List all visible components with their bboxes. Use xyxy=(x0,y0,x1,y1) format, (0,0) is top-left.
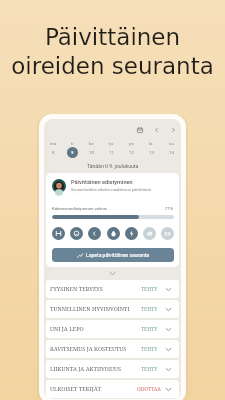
staticText: 8 xyxy=(52,150,55,155)
staticText: TEHTY xyxy=(141,286,158,293)
staticText: su xyxy=(169,141,174,146)
button[interactable]: Notes xyxy=(161,227,174,240)
staticText: 13 xyxy=(149,150,154,155)
button[interactable]: Nutrition xyxy=(107,227,120,240)
staticText: ma xyxy=(50,141,57,146)
staticText: ke xyxy=(89,141,94,146)
staticText: TUNNELLINEN HYVINVOINTI xyxy=(50,305,130,313)
button[interactable]: UNI JA LEPO xyxy=(46,320,179,338)
staticText: FYYSINEN TERVEYS xyxy=(50,285,103,293)
staticText: to xyxy=(109,141,113,146)
button[interactable]: Previous week xyxy=(151,125,161,135)
button[interactable]: LIIKUNTA JA AKTIIVISUUS xyxy=(46,360,179,378)
button[interactable]: Physical health xyxy=(52,227,65,240)
button[interactable]: Activity xyxy=(125,227,138,240)
staticText: ULKOISET TEKIJÄT xyxy=(50,385,101,393)
staticText: Päivittäinen oireiden seuranta xyxy=(0,24,225,79)
staticText: ti xyxy=(71,141,74,146)
button[interactable]: FYYSINEN TERVEYS xyxy=(46,280,179,298)
button[interactable]: 9 xyxy=(67,147,78,158)
button[interactable]: RAVITSEMUS JA KOSTEUTUS xyxy=(46,340,179,358)
staticText: 12 xyxy=(129,150,134,155)
staticText: Seuraa kaikkia aiheita saadaksesi päivit… xyxy=(71,187,151,194)
staticText: RAVITSEMUS JA KOSTEUTUS xyxy=(50,345,127,353)
button[interactable]: ULKOISET TEKIJÄT xyxy=(46,380,179,398)
button[interactable]: Next week xyxy=(168,125,178,135)
staticText: Tänään ti 9. joulukuuta xyxy=(87,163,139,169)
staticText: ODOTTAA xyxy=(137,386,161,393)
staticText: la xyxy=(149,141,153,146)
staticText: 14 xyxy=(169,150,174,155)
staticText: LIIKUNTA JA AKTIIVISUUS xyxy=(50,365,122,373)
button[interactable]: Environment xyxy=(143,227,156,240)
button[interactable]: Lopeta päivittäinen seuranta xyxy=(52,248,174,262)
staticText: Kokonaisedistyminen valmis xyxy=(52,206,108,211)
staticText: UNI JA LEPO xyxy=(50,325,84,333)
staticText: 10 xyxy=(89,150,94,155)
staticText: TEHTY xyxy=(141,366,158,373)
staticText: pe xyxy=(129,141,134,146)
button[interactable]: Emotional wellbeing xyxy=(70,227,83,240)
staticText: 11 xyxy=(109,150,114,155)
button[interactable]: TUNNELLINEN HYVINVOINTI xyxy=(46,300,179,318)
button[interactable]: Open calendar xyxy=(135,125,145,135)
staticText: Päivittäinen edistyminen xyxy=(71,179,133,186)
button[interactable]: Sleep xyxy=(88,227,101,240)
staticText: TEHTY xyxy=(141,326,158,333)
staticText: Lopeta päivittäinen seuranta xyxy=(86,252,150,258)
staticText: TEHTY xyxy=(141,306,158,313)
staticText: 71% xyxy=(165,206,174,211)
staticText: 9 xyxy=(71,150,74,155)
staticText: TEHTY xyxy=(141,346,158,353)
